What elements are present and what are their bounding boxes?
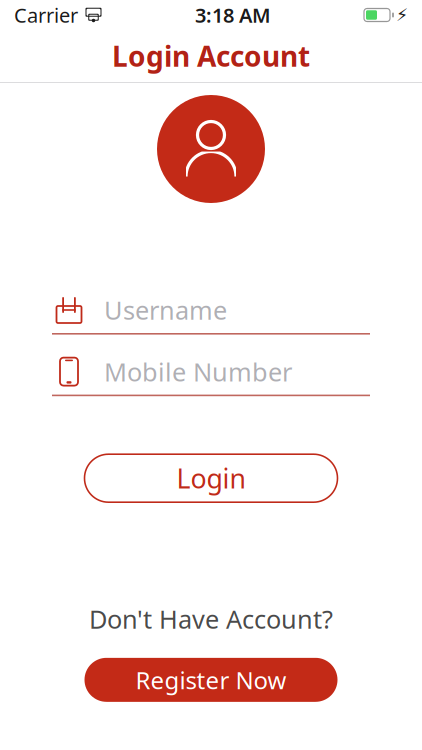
staticText: Login Account: [112, 37, 310, 75]
staticText: Login: [176, 460, 245, 496]
staticText: 3:18 AM: [195, 2, 271, 28]
staticText: Carrier: [14, 2, 78, 28]
button[interactable]: Register Now: [84, 658, 337, 702]
staticText: Don't Have Account?: [89, 602, 333, 636]
staticText: ⚡︎: [396, 5, 408, 25]
staticText: Mobile Number: [104, 355, 292, 388]
staticText: Register Now: [135, 664, 286, 696]
button[interactable]: Login: [84, 454, 337, 502]
staticText: Username: [104, 293, 227, 327]
